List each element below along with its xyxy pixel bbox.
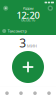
staticText: мин (27, 42, 37, 49)
button[interactable]: Profile (46, 4, 55, 12)
staticText: Таксометр (8, 28, 27, 34)
button[interactable]: Map (14, 86, 28, 100)
staticText: 3 (19, 35, 26, 51)
staticText: 12:20 (16, 9, 39, 21)
button[interactable]: Search (28, 86, 42, 100)
button[interactable]: Menu (1, 4, 10, 12)
button[interactable]: Orders (0, 86, 14, 100)
button[interactable]: Add order (12, 51, 44, 83)
staticText: Рядом (22, 5, 33, 11)
staticText: 06.08.16 (21, 17, 35, 23)
button[interactable]: More (42, 86, 56, 100)
